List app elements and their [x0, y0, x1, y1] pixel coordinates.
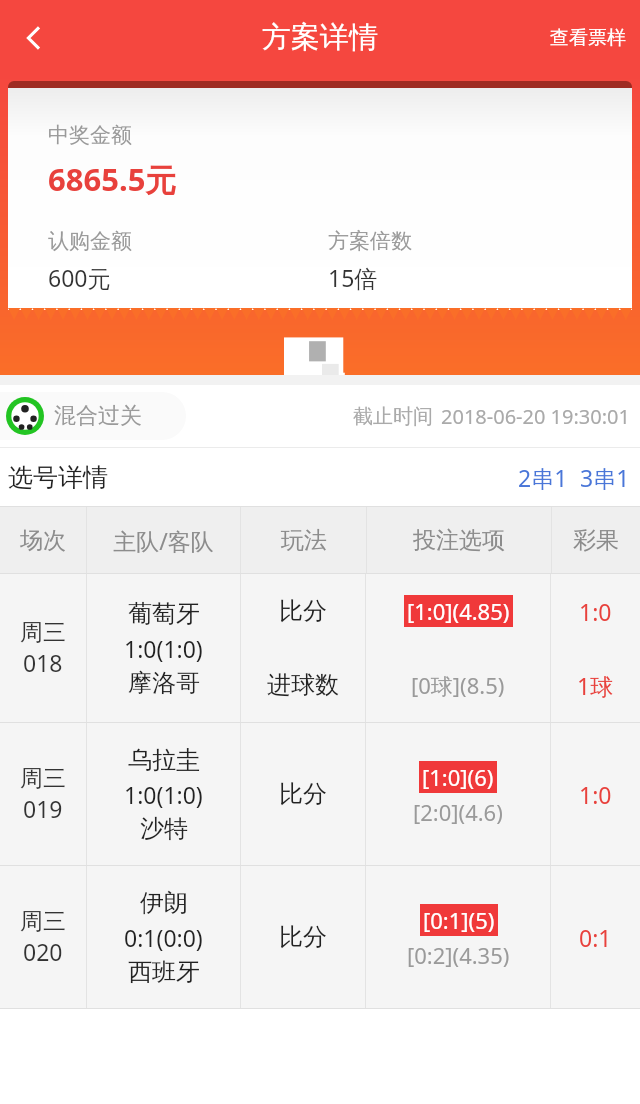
staticText: 主队/客队 [113, 525, 214, 556]
staticText: [2:0](4.6) [413, 797, 503, 827]
staticText: 比分 [279, 779, 327, 809]
staticText: 比分 [279, 922, 327, 952]
staticText: 葡萄牙 [128, 599, 200, 629]
staticText: [1:0](4.85) [407, 596, 510, 626]
staticText: [0球](8.5) [411, 670, 505, 700]
staticText: 方案详情 [262, 19, 378, 56]
staticText: 1球 [577, 670, 614, 701]
staticText: 1:0 [579, 596, 612, 627]
staticText: 600元 [48, 262, 111, 293]
staticText: 进球数 [267, 670, 339, 700]
button[interactable]: 查看票样 [546, 18, 630, 58]
staticText: 15倍 [328, 262, 378, 293]
staticText: 乌拉圭 [128, 745, 200, 775]
staticText: 混合过关 [54, 402, 142, 430]
staticText: 场次 [20, 526, 66, 555]
staticText: 周三 [20, 764, 66, 793]
staticText: 彩果 [573, 526, 619, 555]
staticText: 周三 [20, 907, 66, 936]
button[interactable]: 3串1 [578, 462, 632, 493]
staticText: 截止时间 [353, 404, 433, 429]
staticText: 0:1(0:0) [124, 922, 203, 953]
staticText: 3串1 [580, 462, 630, 493]
staticText: 投注选项 [413, 526, 505, 555]
staticText: 认购金额 [48, 228, 132, 254]
staticText: 方案倍数 [328, 228, 412, 254]
staticText: 中奖金额 [48, 122, 132, 148]
staticText: 选号详情 [8, 462, 108, 493]
staticText: 1:0 [579, 779, 612, 810]
staticText: 查看票样 [550, 26, 626, 50]
staticText: 2018-06-20 19:30:01 [441, 403, 630, 430]
staticText: 6865.5元 [48, 158, 177, 200]
button[interactable]: 周三 [0, 723, 640, 865]
staticText: 比分 [279, 596, 327, 626]
staticText: 周三 [20, 618, 66, 647]
button[interactable]: 周三 [0, 574, 640, 722]
staticText: 0:1 [579, 922, 612, 953]
staticText: 018 [23, 647, 63, 678]
staticText: [1:0](6) [422, 762, 494, 792]
button[interactable]: 混合过关 [0, 385, 640, 447]
staticText: 玩法 [281, 526, 327, 555]
staticText: 020 [23, 936, 63, 967]
staticText: [0:2](4.35) [407, 940, 510, 970]
staticText: 019 [23, 793, 63, 824]
staticText: 伊朗 [140, 888, 188, 918]
staticText: [0:1](5) [423, 905, 495, 935]
staticText: 沙特 [140, 814, 188, 844]
staticText: 西班牙 [128, 957, 200, 987]
button[interactable]: 周三 [0, 866, 640, 1008]
button[interactable]: 2串1 [514, 462, 572, 493]
staticText: 1:0(1:0) [124, 633, 203, 664]
staticText: 摩洛哥 [128, 668, 200, 698]
button[interactable]: Back [6, 10, 62, 66]
staticText: 1:0(1:0) [124, 779, 203, 810]
staticText: 2串1 [518, 462, 568, 493]
